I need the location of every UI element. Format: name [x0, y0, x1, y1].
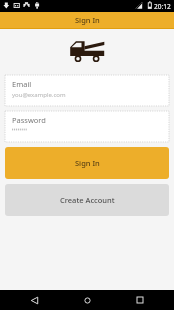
button[interactable]: Recent apps	[116, 290, 174, 310]
button[interactable]: Back	[0, 290, 58, 310]
staticText: Sign In	[75, 158, 100, 168]
button[interactable]: Password	[5, 111, 169, 142]
staticText: you@example.com	[12, 91, 66, 99]
button[interactable]: Create Account	[5, 184, 169, 216]
staticText: 20:12	[154, 2, 171, 11]
staticText: Email	[12, 79, 32, 89]
button[interactable]: Home	[58, 290, 116, 310]
staticText: Password	[12, 115, 46, 125]
button[interactable]: Email	[5, 75, 169, 106]
button[interactable]: Sign In	[5, 147, 169, 179]
staticText: Sign In	[75, 15, 100, 25]
staticText: Create Account	[60, 195, 115, 205]
